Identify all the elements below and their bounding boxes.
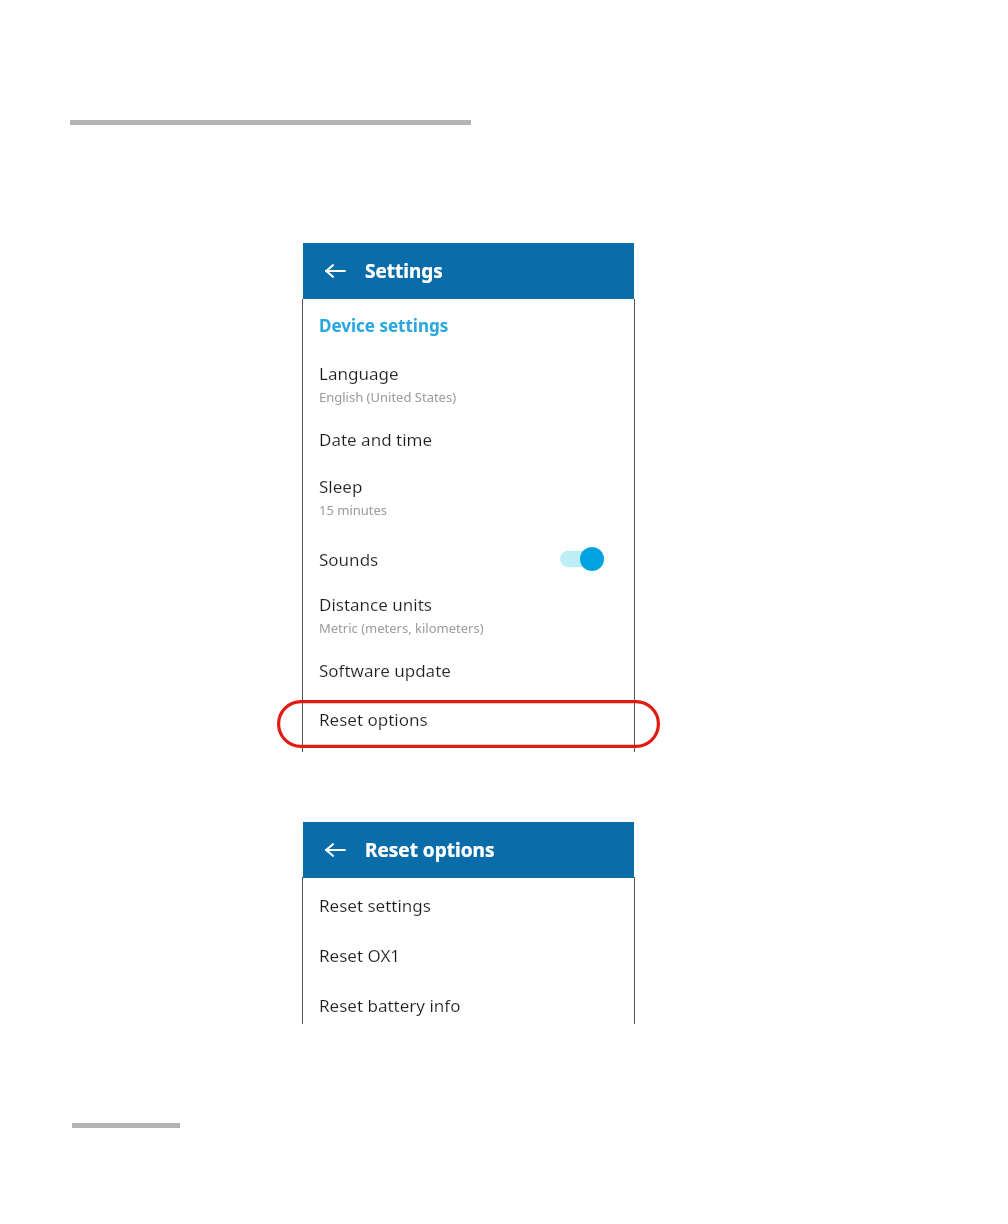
staticText: Reset options [365, 837, 495, 863]
staticText: Software update [319, 659, 451, 682]
staticText: English (United States) [319, 388, 457, 406]
staticText: Sleep [319, 475, 363, 498]
staticText: Settings [365, 258, 443, 284]
button[interactable]: Date and time [303, 428, 634, 451]
button[interactable]: Distance units [303, 593, 634, 637]
button[interactable]: Sleep [303, 475, 634, 519]
button[interactable]: Software update [303, 659, 634, 682]
button[interactable]: Sounds toggle [560, 547, 604, 571]
staticText: Reset OX1 [319, 944, 401, 967]
staticText: Distance units [319, 593, 432, 616]
staticText: Language [319, 362, 399, 385]
button[interactable]: Reset settings [303, 894, 634, 917]
button[interactable]: Language [303, 362, 634, 406]
button[interactable]: Back [319, 834, 351, 866]
staticText: 15 minutes [319, 501, 388, 519]
button[interactable]: Reset options [303, 708, 634, 731]
staticText: Reset battery info [319, 994, 461, 1017]
staticText: Reset options [319, 708, 428, 731]
staticText: Metric (meters, kilometers) [319, 619, 484, 637]
button[interactable]: Reset OX1 [303, 944, 634, 967]
button[interactable]: Back [319, 255, 351, 287]
staticText: Date and time [319, 428, 433, 451]
button[interactable]: Reset battery info [303, 994, 634, 1017]
staticText: Reset settings [319, 894, 431, 917]
staticText: Sounds [319, 548, 560, 571]
staticText: Device settings [319, 314, 449, 337]
button[interactable]: Sounds [303, 547, 634, 571]
